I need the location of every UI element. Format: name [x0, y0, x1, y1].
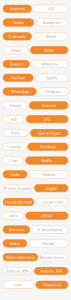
staticText: Hostelería [43, 282, 61, 287]
button[interactable]: Móvil [34, 33, 68, 40]
button[interactable]: Amazon [3, 226, 30, 233]
button[interactable]: Telegram [38, 88, 68, 95]
button[interactable]: Prensa en papel [3, 184, 32, 192]
staticText: eBook [41, 213, 52, 218]
button[interactable]: Radio [3, 171, 27, 178]
button[interactable]: Que te llegan [30, 129, 68, 137]
button[interactable]: Digital [34, 184, 68, 192]
staticText: Portátil [42, 241, 54, 246]
staticText: Móvil [46, 34, 56, 39]
staticText: Uso profesional [5, 199, 32, 205]
button[interactable]: WhatsApp [3, 88, 36, 95]
button[interactable]: Batería -30% [34, 267, 68, 275]
button[interactable]: Hostelería [36, 281, 68, 288]
staticText: Selfie [11, 130, 20, 136]
staticText: Facebook [40, 144, 56, 149]
staticText: Cine [9, 158, 17, 163]
button[interactable]: Reunión presencial [40, 253, 68, 261]
button[interactable]: Ir de compras [32, 226, 68, 233]
button[interactable]: Selfie [3, 129, 28, 137]
button[interactable]: eBook [26, 212, 68, 219]
staticText: Radio [11, 172, 20, 177]
staticText: Leer [14, 282, 22, 287]
staticText: Hotmail [42, 103, 56, 108]
staticText: Libro [9, 213, 18, 218]
staticText: Spotify [46, 75, 57, 80]
staticText: Que te llegan [38, 130, 60, 136]
button[interactable]: Videos [3, 240, 27, 247]
button[interactable]: Linkedin [3, 143, 25, 150]
button[interactable]: Portátil [29, 240, 68, 247]
staticText: Telegram [45, 89, 62, 94]
button[interactable]: wifi [3, 115, 24, 123]
button[interactable]: Hotmail [29, 102, 68, 109]
button[interactable]: Podcast [29, 171, 68, 178]
staticText: Reunión presencial [40, 254, 68, 260]
staticText: Yahoo [11, 47, 21, 53]
staticText: iOS [48, 6, 54, 11]
staticText: WhatsApp [11, 89, 29, 94]
staticText: Batería -30% [40, 268, 62, 274]
staticText: Amazon [9, 227, 24, 232]
button[interactable]: Android [3, 5, 31, 12]
button[interactable]: Yahoo [3, 46, 28, 54]
staticText: Ir de compras [37, 227, 62, 232]
button[interactable]: Boomit [3, 60, 29, 68]
staticText: Redes [44, 47, 54, 53]
staticText: Alfarería [42, 61, 58, 67]
button[interactable]: Spotify [35, 74, 68, 81]
button[interactable]: Alfarería [32, 60, 68, 68]
staticText: Twitter [12, 20, 24, 25]
button[interactable]: Leer [3, 281, 34, 288]
button[interactable]: Redes [30, 46, 68, 54]
button[interactable]: Uso profesional [3, 198, 34, 206]
button[interactable]: Cine [3, 157, 23, 164]
button[interactable]: Yahoo! [3, 102, 27, 109]
staticText: Yahoo! [10, 103, 21, 108]
staticText: Prensa en papel [4, 185, 31, 191]
staticText: Videos [9, 241, 20, 246]
button[interactable]: Facebook [28, 143, 68, 150]
staticText: Netflix [41, 158, 52, 163]
staticText: Ordenador [8, 34, 27, 39]
button[interactable]: Ordenador [3, 33, 31, 40]
staticText: Instagram [43, 20, 61, 25]
staticText: YouTube [11, 75, 25, 80]
button[interactable]: Videoconferencia [3, 253, 38, 261]
button[interactable]: JPG [26, 115, 68, 123]
staticText: Boomit [10, 61, 23, 67]
button[interactable]: Instagram [36, 19, 68, 26]
staticText: Podcast [42, 172, 55, 177]
staticText: Linkedin [7, 144, 21, 149]
staticText: Digital [46, 185, 57, 191]
button[interactable]: Netflix [26, 157, 68, 164]
button[interactable]: Twitter [3, 19, 34, 26]
staticText: JPG [44, 116, 50, 122]
button[interactable]: YouTube [3, 74, 33, 81]
staticText: Uso personal [40, 199, 63, 205]
staticText: Batería -30% [7, 268, 29, 274]
button[interactable]: Uso personal [36, 198, 68, 206]
staticText: Android [10, 6, 24, 11]
button[interactable]: iOS [34, 5, 68, 12]
button[interactable]: Libro [3, 212, 23, 219]
button[interactable]: Batería -30% [3, 267, 32, 275]
staticText: Videoconferencia [6, 254, 35, 260]
staticText: wifi [11, 116, 17, 122]
